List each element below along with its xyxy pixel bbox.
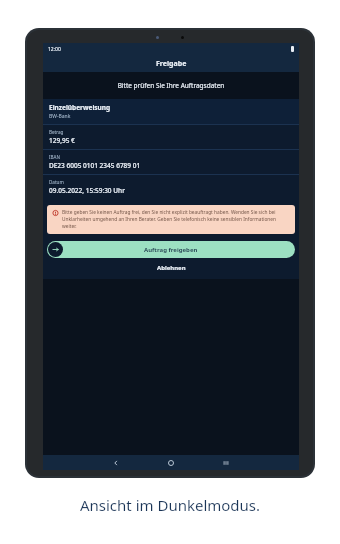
staticText: Freigabe [156, 59, 187, 69]
staticText: 129,95 € [49, 136, 75, 145]
staticText: Ablehnen [157, 264, 186, 272]
staticText: BW-Bank [49, 113, 71, 120]
staticText: Bitte geben Sie keinen Auftrag frei, den… [62, 209, 290, 230]
button[interactable]: Back [109, 456, 123, 470]
staticText: Betrag [49, 129, 64, 135]
staticText: 09.05.2022, 15:59:30 Uhr [49, 186, 125, 195]
staticText: DE23 6005 0101 2345 6789 01 [49, 161, 141, 170]
button[interactable]: Ablehnen [43, 264, 299, 272]
staticText: Einzelüberweisung [49, 103, 111, 112]
staticText: 12:00 [48, 46, 61, 53]
other: Auftrag freigeben [48, 242, 63, 257]
staticText: Datum [49, 179, 64, 185]
staticText: Ansicht im Dunkelmodus. [0, 495, 340, 515]
button[interactable]: Recent apps [219, 456, 233, 470]
staticText: Bitte prüfen Sie Ihre Auftragsdaten [43, 81, 299, 90]
button[interactable]: Home [164, 456, 178, 470]
staticText: IBAN [49, 154, 60, 160]
button[interactable]: Auftrag freigeben [47, 241, 295, 258]
staticText: Auftrag freigeben [144, 246, 198, 254]
